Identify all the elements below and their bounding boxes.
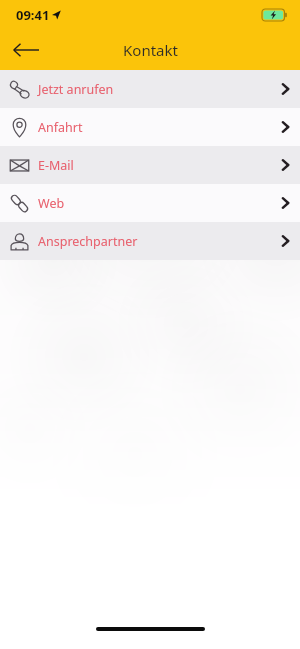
staticText: 09:41 <box>16 6 50 24</box>
button[interactable]: E-Mail <box>0 146 300 184</box>
button[interactable]: Anfahrt <box>0 108 300 146</box>
button[interactable]: Web <box>0 184 300 222</box>
staticText: Web <box>38 195 65 212</box>
staticText: Jetzt anrufen <box>38 81 114 98</box>
button[interactable]: Jetzt anrufen <box>0 70 300 108</box>
staticText: Kontakt <box>123 40 178 60</box>
staticText: E-Mail <box>38 157 74 174</box>
staticText: Anfahrt <box>38 119 83 136</box>
button[interactable]: Ansprechpartner <box>0 222 300 260</box>
button[interactable]: Zurück <box>0 29 52 70</box>
staticText: Ansprechpartner <box>38 233 138 250</box>
